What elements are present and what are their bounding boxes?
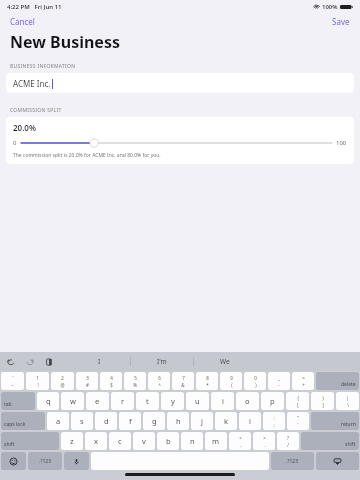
staticText: z [70,436,74,446]
staticText: v [142,436,146,446]
button[interactable]: k [215,412,237,430]
staticText: q [46,396,51,406]
staticText: y [171,396,175,406]
button[interactable]: x [85,432,107,450]
button[interactable]: u [186,392,209,410]
button[interactable]: delete [316,372,359,390]
button[interactable]: I [69,352,130,371]
staticText: % [133,382,137,388]
button[interactable]: 5 [124,372,146,390]
staticText: ACME Inc. [13,78,51,89]
button[interactable]: Redo [24,356,36,368]
button[interactable]: 4 [100,372,122,390]
button[interactable]: | [336,392,359,410]
button[interactable]: : [263,412,285,430]
staticText: 5 [134,375,137,381]
button[interactable]: 1 [26,372,49,390]
staticText: 2 [61,375,64,381]
staticText: g [152,416,157,426]
button[interactable]: We [194,352,256,371]
staticText: [ [297,402,299,408]
button[interactable]: o [236,392,259,410]
button[interactable]: ? [277,432,299,450]
button[interactable]: e [86,392,109,410]
staticText: delete [341,381,356,388]
button[interactable]: Save [330,14,352,29]
button[interactable]: = [292,372,314,390]
button[interactable]: y [161,392,184,410]
staticText: 6 [158,375,161,381]
staticText: ` [12,375,14,381]
button[interactable]: v [133,432,155,450]
button[interactable]: c [109,432,131,450]
button[interactable]: Emoji [1,452,26,470]
button[interactable]: j [191,412,213,430]
staticText: New Business [10,31,120,53]
button[interactable]: a [47,412,69,430]
staticText: n [190,436,195,446]
staticText: shift [4,441,15,448]
button[interactable]: .?123 [28,452,62,470]
staticText: BUSINESS INFORMATION [10,63,76,70]
button[interactable]: p [261,392,284,410]
staticText: shift [345,441,356,448]
button[interactable]: w [61,392,84,410]
button[interactable]: I'm [131,352,193,371]
staticText: d [104,416,109,426]
button[interactable]: Hide keyboard [316,452,359,470]
button[interactable]: t [136,392,159,410]
button[interactable]: shift [301,432,359,450]
button[interactable]: q [37,392,59,410]
staticText: I'm [157,357,167,366]
button[interactable]: return [311,412,359,430]
button[interactable]: 2 [51,372,74,390]
staticText: ] [322,402,324,408]
button[interactable]: _ [268,372,290,390]
button[interactable]: " [287,412,309,430]
button[interactable]: 8 [196,372,218,390]
staticText: e [95,396,100,406]
button[interactable]: i [211,392,234,410]
button[interactable]: l [239,412,261,430]
button[interactable]: b [157,432,179,450]
button[interactable]: tab [1,392,35,410]
button[interactable]: n [181,432,203,450]
button[interactable]: 9 [220,372,242,390]
button[interactable]: Paste [43,356,55,368]
button[interactable]: ACME Inc. [6,73,354,93]
staticText: return [341,421,356,428]
button[interactable]: z [61,432,83,450]
button[interactable]: caps lock [1,412,45,430]
staticText: $ [110,382,113,388]
button[interactable]: r [111,392,134,410]
button[interactable]: { [286,392,309,410]
button[interactable]: s [71,412,93,430]
button[interactable]: Dictate [64,452,89,470]
staticText: x [94,436,98,446]
staticText: f [129,416,132,426]
button[interactable]: Undo [5,356,17,368]
staticText: | [346,395,349,401]
button[interactable]: > [253,432,275,450]
button[interactable]: < [229,432,251,450]
button[interactable]: m [205,432,227,450]
button[interactable]: } [311,392,334,410]
staticText: p [270,396,275,406]
button[interactable]: 0 [244,372,266,390]
staticText: u [195,396,200,406]
button[interactable]: 7 [172,372,194,390]
button[interactable]: g [143,412,165,430]
button[interactable]: d [95,412,117,430]
button[interactable]: shift [1,432,59,450]
button[interactable]: .?123 [271,452,314,470]
button[interactable]: f [119,412,141,430]
button[interactable]: h [167,412,189,430]
staticText: @ [60,382,65,388]
staticText: : [273,415,275,421]
button[interactable]: 6 [148,372,170,390]
button[interactable] [21,138,332,148]
button[interactable]: Cancel [8,14,37,29]
button[interactable]: ` [1,372,24,390]
button[interactable]: 3 [76,372,98,390]
